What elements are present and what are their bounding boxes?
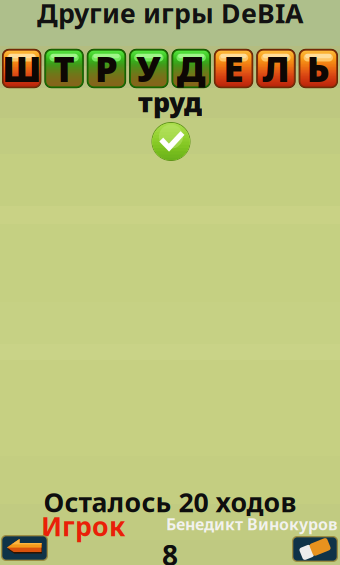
staticText: Игрок — [41, 508, 125, 544]
staticText: Е — [224, 44, 244, 92]
staticText: Т — [54, 44, 75, 92]
button[interactable]: Л — [256, 49, 296, 88]
staticText: Ш — [2, 44, 41, 92]
staticText: Ь — [307, 44, 330, 92]
button[interactable]: Ш — [2, 49, 41, 88]
button[interactable]: Т — [44, 49, 84, 88]
button[interactable]: Д — [171, 49, 211, 88]
staticText: 8 — [162, 536, 178, 565]
staticText: Бенедикт Винокуров — [166, 513, 338, 535]
staticText: Другие игры DeBIA — [37, 0, 303, 31]
staticText: Осталось 20 ходов — [43, 484, 296, 520]
staticText: У — [136, 44, 161, 92]
staticText: Р — [95, 44, 118, 92]
staticText: Л — [262, 44, 289, 92]
button[interactable]: Е — [214, 49, 253, 88]
button[interactable]: Р — [87, 49, 126, 88]
button[interactable]: Ь — [299, 49, 338, 88]
staticText: труд — [138, 84, 202, 120]
button[interactable]: Другие игры DeBIA — [0, 0, 340, 46]
button[interactable]: Clear word — [292, 536, 338, 562]
button[interactable]: У — [129, 49, 168, 88]
button[interactable]: Undo last move — [1, 535, 48, 561]
staticText: Д — [177, 44, 206, 92]
